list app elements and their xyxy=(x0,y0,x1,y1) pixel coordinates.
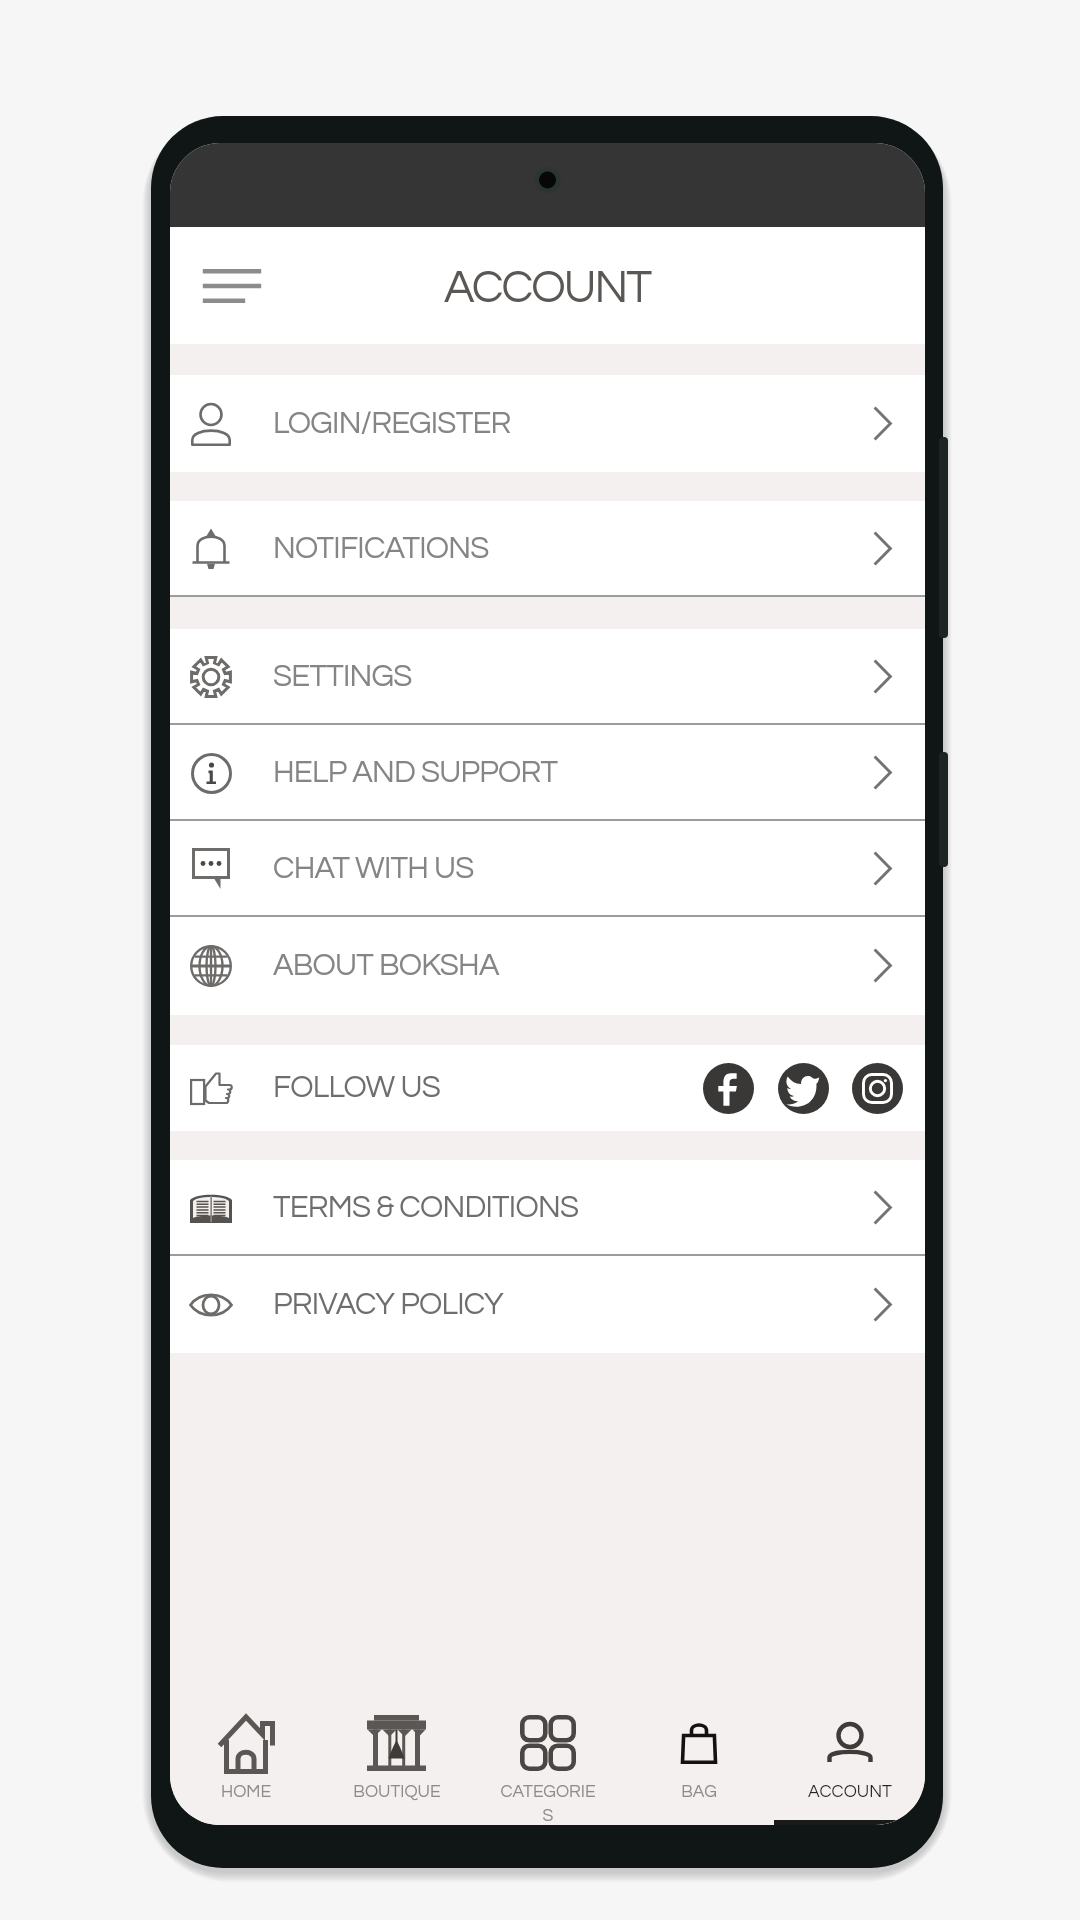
button[interactable]: CATEGORIES xyxy=(472,1680,623,1825)
button[interactable]: HELP AND SUPPORT xyxy=(170,725,925,821)
staticText: ACCOUNT xyxy=(802,1783,898,1801)
button[interactable]: LOGIN/REGISTER xyxy=(170,375,925,472)
button[interactable]: BOUTIQUE xyxy=(321,1680,472,1825)
button[interactable]: CHAT WITH US xyxy=(170,821,925,917)
staticText: ABOUT BOKSHA xyxy=(273,950,499,982)
button[interactable]: ABOUT BOKSHA xyxy=(170,917,925,1015)
staticText: LOGIN/REGISTER xyxy=(273,408,511,440)
button[interactable]: NOTIFICATIONS xyxy=(170,501,925,597)
button[interactable]: HOME xyxy=(170,1680,321,1825)
staticText: PRIVACY POLICY xyxy=(273,1289,504,1321)
button[interactable]: ACCOUNT xyxy=(774,1680,925,1825)
staticText: TERMS & CONDITIONS xyxy=(273,1192,579,1224)
button[interactable]: Twitter xyxy=(778,1063,829,1114)
staticText: HOME xyxy=(198,1783,294,1801)
staticText: BOUTIQUE xyxy=(349,1783,445,1801)
button[interactable]: Facebook xyxy=(703,1063,754,1114)
button[interactable]: BAG xyxy=(623,1680,774,1825)
button[interactable]: TERMS & CONDITIONS xyxy=(170,1160,925,1256)
button[interactable]: PRIVACY POLICY xyxy=(170,1256,925,1353)
button[interactable]: Instagram xyxy=(852,1063,903,1114)
button[interactable]: Open navigation menu xyxy=(194,248,270,324)
staticText: CATEGORIES xyxy=(500,1783,596,1825)
staticText: HELP AND SUPPORT xyxy=(273,757,558,789)
staticText: NOTIFICATIONS xyxy=(273,533,489,565)
button[interactable]: FOLLOW US xyxy=(170,1045,925,1131)
staticText: SETTINGS xyxy=(273,661,412,693)
staticText: CHAT WITH US xyxy=(273,853,474,885)
staticText: FOLLOW US xyxy=(273,1072,440,1104)
staticText: BAG xyxy=(651,1783,747,1801)
staticText: ACCOUNT xyxy=(444,264,651,311)
button[interactable]: SETTINGS xyxy=(170,629,925,725)
